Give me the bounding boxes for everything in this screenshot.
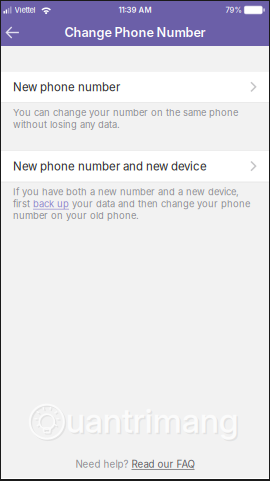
staticText: uantrimang bbox=[67, 402, 240, 442]
staticText: Change Phone Number bbox=[64, 25, 205, 40]
staticText: uantrimang bbox=[66, 400, 239, 441]
staticText: Viettel bbox=[14, 5, 35, 14]
staticText: back up bbox=[33, 198, 69, 209]
button[interactable]: Need help? bbox=[1, 450, 269, 478]
staticText: If you have both a new number and a new … bbox=[13, 186, 239, 198]
staticText: first bbox=[13, 198, 33, 209]
staticText: New phone number bbox=[13, 80, 120, 94]
staticText: without losing any data. bbox=[13, 119, 120, 130]
staticText: your data and then change your phone bbox=[69, 198, 250, 209]
staticText: 11:39 AM bbox=[118, 5, 151, 15]
staticText: 79% bbox=[225, 5, 241, 14]
staticText: Read our FAQ bbox=[131, 458, 194, 470]
button[interactable]: New phone number bbox=[1, 71, 269, 102]
staticText: New phone number and new device bbox=[13, 159, 207, 173]
staticText: You can change your number on the same p… bbox=[13, 107, 238, 118]
staticText: Need help? bbox=[75, 458, 128, 470]
button[interactable]: New phone number and new device bbox=[1, 151, 269, 182]
staticText: number on your old phone. bbox=[13, 210, 139, 221]
button[interactable]: back up bbox=[33, 198, 69, 209]
button[interactable]: Back bbox=[1, 19, 37, 45]
